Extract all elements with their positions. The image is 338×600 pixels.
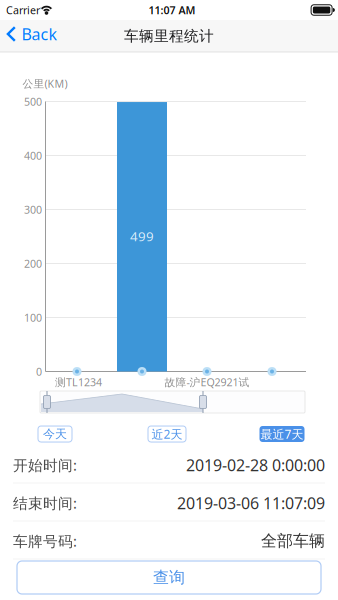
staticText: 100 xyxy=(24,310,42,325)
staticText: 测TL1234 xyxy=(55,375,102,389)
button[interactable]: 最近7天 xyxy=(259,426,304,442)
button[interactable]: 近2天 xyxy=(148,426,186,442)
staticText: 车牌号码: xyxy=(13,531,77,551)
staticText: 2019-03-06 11:07:09 xyxy=(177,492,325,514)
button[interactable]: 今天 xyxy=(38,426,72,442)
staticText: 全部车辆 xyxy=(261,531,325,551)
staticText: Back xyxy=(21,23,57,45)
staticText: 开始时间: xyxy=(13,455,77,475)
staticText: 故障-沪EQ2921试 xyxy=(164,375,249,389)
staticText: 近2天 xyxy=(151,426,182,442)
button[interactable]: Back xyxy=(0,18,67,50)
staticText: 最近7天 xyxy=(260,426,303,442)
staticText: 2019-02-28 0:00:00 xyxy=(186,454,325,476)
staticText: 11:07 AM xyxy=(148,3,195,17)
staticText: 车辆里程统计 xyxy=(124,27,214,45)
button[interactable]: 查询 xyxy=(17,561,321,594)
staticText: 300 xyxy=(24,202,42,217)
staticText: 结束时间: xyxy=(13,493,77,513)
staticText: 400 xyxy=(24,148,42,163)
staticText: 200 xyxy=(24,256,42,271)
staticText: 500 xyxy=(24,94,42,109)
staticText: 499 xyxy=(130,227,154,245)
staticText: Carrier xyxy=(6,3,40,17)
staticText: 0 xyxy=(36,364,42,379)
staticText: 查询 xyxy=(153,568,185,587)
staticText: 公里(KM) xyxy=(22,76,67,91)
staticText: 今天 xyxy=(43,427,67,441)
